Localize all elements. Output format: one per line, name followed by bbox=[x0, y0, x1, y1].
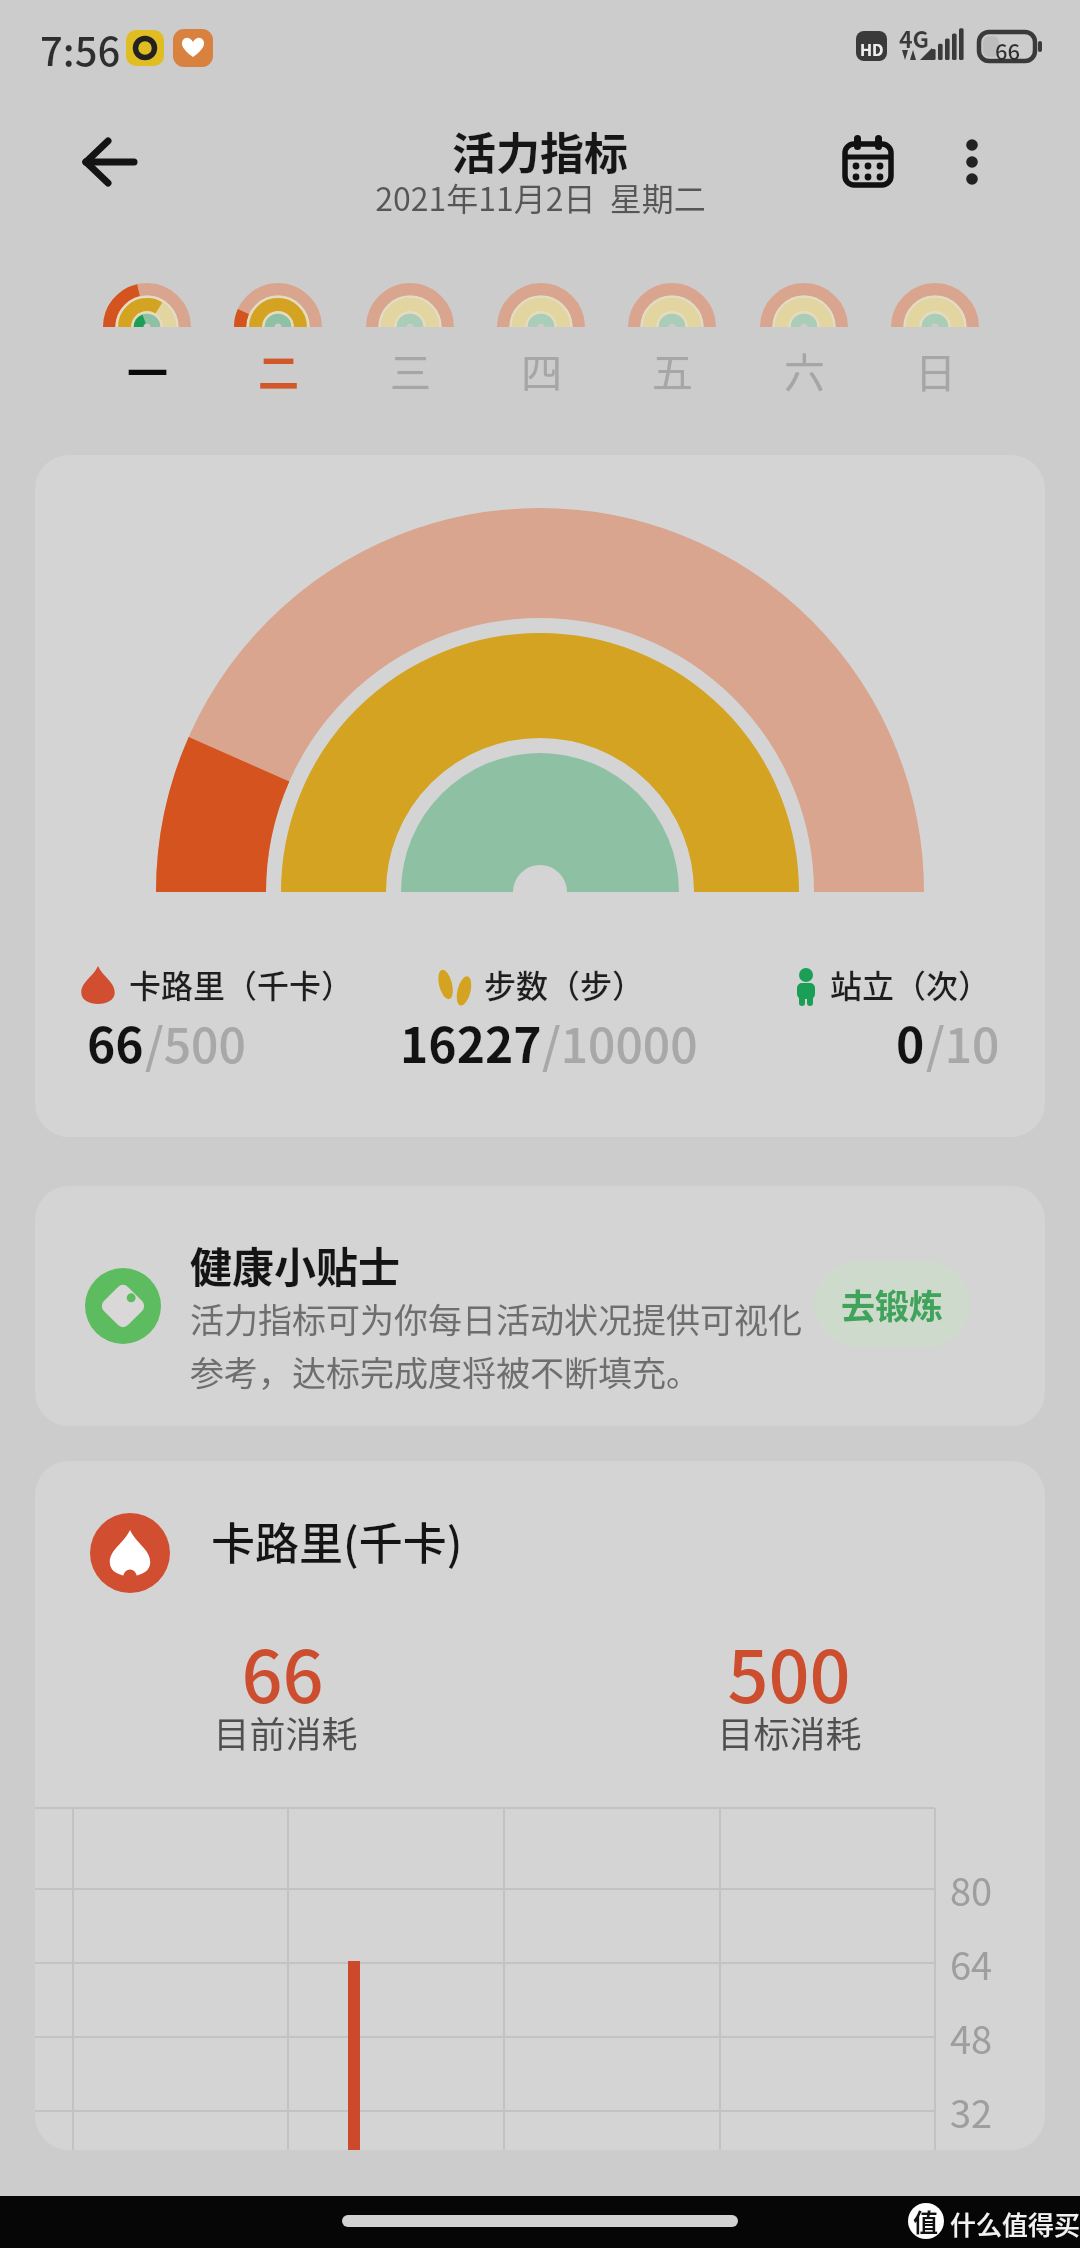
staticText: 500 bbox=[727, 1619, 851, 1723]
button[interactable] bbox=[948, 132, 996, 192]
staticText: 二 bbox=[258, 340, 299, 399]
staticText: 目标消耗 bbox=[717, 1706, 862, 1758]
staticText: 六 bbox=[784, 340, 825, 399]
staticText: 五 bbox=[652, 340, 693, 399]
staticText: 0 bbox=[896, 1007, 925, 1077]
staticText: /10000 bbox=[542, 1007, 698, 1077]
button[interactable] bbox=[481, 280, 601, 390]
staticText: 日 bbox=[915, 340, 956, 399]
staticText: 值 bbox=[913, 2203, 939, 2239]
staticText: HD bbox=[860, 37, 884, 60]
staticText: 活力指标 bbox=[452, 119, 628, 183]
staticText: 2021年11月2日 星期二 bbox=[375, 174, 706, 220]
staticText: 站立（次） bbox=[830, 961, 991, 1007]
staticText: 48 bbox=[950, 2010, 993, 2065]
staticText: 一 bbox=[127, 340, 168, 399]
staticText: 7:56 bbox=[40, 20, 121, 78]
button[interactable] bbox=[612, 280, 732, 390]
staticText: 66 bbox=[995, 34, 1021, 66]
staticText: 四 bbox=[521, 340, 562, 399]
button[interactable] bbox=[218, 280, 338, 390]
staticText: 目前消耗 bbox=[213, 1706, 358, 1758]
staticText: 80 bbox=[950, 1862, 993, 1917]
staticText: /500 bbox=[145, 1007, 246, 1077]
staticText: 三 bbox=[390, 340, 431, 399]
staticText: 什么值得买 bbox=[950, 2205, 1080, 2243]
staticText: 去锻炼 bbox=[841, 1280, 943, 1329]
button[interactable] bbox=[78, 134, 142, 190]
button[interactable] bbox=[875, 280, 995, 390]
staticText: 卡路里(千卡) bbox=[211, 1509, 463, 1573]
button[interactable] bbox=[744, 280, 864, 390]
staticText: 参考，达标完成度将被不断填充。 bbox=[190, 1347, 700, 1396]
button[interactable]: 去锻炼 bbox=[814, 1261, 970, 1347]
staticText: 66 bbox=[87, 1007, 144, 1077]
button[interactable] bbox=[87, 280, 207, 390]
staticText: /10 bbox=[926, 1007, 1000, 1077]
button[interactable] bbox=[350, 280, 470, 390]
staticText: 健康小贴士 bbox=[190, 1234, 401, 1295]
staticText: 16227 bbox=[400, 1007, 542, 1077]
staticText: 64 bbox=[950, 1936, 993, 1991]
staticText: 活力指标可为你每日活动状况提供可视化 bbox=[190, 1294, 802, 1343]
staticText: 步数（步） bbox=[484, 961, 645, 1007]
staticText: 4G bbox=[899, 21, 930, 54]
staticText: 66 bbox=[241, 1619, 324, 1723]
staticText: 32 bbox=[950, 2084, 993, 2139]
staticText: 卡路里（千卡） bbox=[129, 961, 354, 1007]
button[interactable] bbox=[840, 132, 896, 188]
